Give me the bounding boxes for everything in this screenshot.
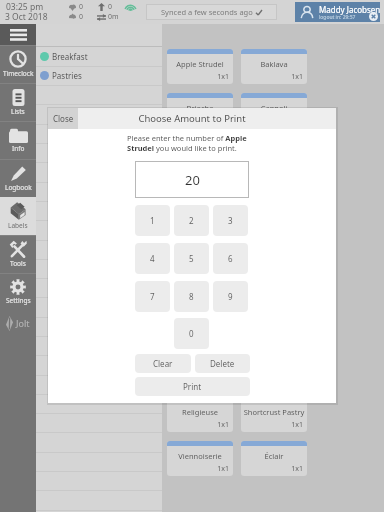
button[interactable]: 4 [135, 243, 170, 274]
staticText: 20 [185, 171, 200, 189]
button[interactable]: Cannoli [241, 93, 307, 128]
button[interactable]: Log out [369, 12, 378, 21]
staticText: 1x1 [167, 72, 229, 82]
staticText: Logbook [5, 183, 32, 192]
button[interactable]: Shortcrust Pastry [241, 397, 307, 432]
staticText: Pastries [52, 70, 82, 81]
staticText: 0 [79, 12, 84, 22]
staticText: Baklava [241, 59, 307, 69]
button[interactable]: 0 [174, 318, 209, 349]
button[interactable]: Timeclock [0, 45, 36, 83]
button[interactable]: Pastries [36, 66, 162, 85]
staticText: 1x1 [167, 420, 229, 430]
staticText: 1x1 [241, 464, 303, 474]
staticText: Print [183, 381, 202, 392]
staticText: 0 [79, 2, 84, 12]
staticText: Flaky Pastry [167, 277, 233, 287]
staticText: Close [53, 113, 74, 124]
button[interactable]: Maddy Jacobsen [295, 2, 380, 22]
button[interactable]: Baklava [241, 49, 307, 84]
button[interactable]: Danish Pastry [241, 180, 307, 215]
staticText: Danish Pastry [241, 190, 307, 200]
button[interactable]: Religieuse [167, 397, 233, 432]
staticText: 1x1 [241, 72, 303, 82]
button[interactable]: Synced a few seconds ago [146, 4, 277, 20]
staticText: Labels [8, 221, 28, 230]
staticText: Cheesecake [167, 146, 233, 156]
button[interactable]: Print [135, 377, 250, 396]
button[interactable]: Flaky Pastry [167, 267, 233, 302]
staticText: 8 [189, 291, 194, 302]
button[interactable]: Menu [0, 24, 36, 45]
staticText: Maddy Jacobsen [319, 4, 381, 15]
staticText: Macaron [241, 277, 307, 287]
staticText: Tools [10, 259, 26, 268]
staticText: 1x1 [167, 290, 229, 300]
staticText: Settings [6, 296, 31, 305]
button[interactable]: Profiterole [167, 354, 233, 389]
staticText: Info [12, 144, 25, 153]
button[interactable]: Breakfast [36, 47, 162, 66]
button[interactable]: Info [0, 121, 36, 159]
button[interactable]: Croissant [167, 180, 233, 215]
button[interactable]: 3 [213, 205, 248, 236]
button[interactable]: Close [48, 108, 78, 129]
staticText: Breakfast [52, 51, 88, 62]
staticText: 1x1 [241, 203, 303, 213]
staticText: 0m [108, 12, 119, 22]
staticText: Éclair [241, 451, 307, 461]
staticText: Croissant [167, 190, 233, 200]
button[interactable]: Settings [0, 273, 36, 311]
button[interactable]: Mille-feuille [167, 310, 233, 345]
button[interactable]: 6 [213, 243, 248, 274]
button[interactable]: Filo Pastry [241, 223, 307, 258]
button[interactable]: Éclair [241, 441, 307, 476]
staticText: 1x1 [241, 159, 303, 169]
staticText: Filo Pastry [241, 233, 307, 243]
staticText: 1 [150, 215, 155, 226]
staticText: Please enter the number of Apple Strudel… [127, 133, 261, 153]
staticText: Profiterole [167, 364, 233, 374]
staticText: Mille-feuille [167, 320, 233, 330]
staticText: Lists [11, 107, 25, 116]
staticText: Viennoiserie [167, 451, 233, 461]
button[interactable]: Tools [0, 235, 36, 273]
staticText: Shortcrust Pastry [241, 407, 307, 417]
staticText: 2 [189, 215, 194, 226]
staticText: Clear [153, 358, 173, 369]
button[interactable]: Jolt [0, 311, 36, 335]
button[interactable]: 8 [174, 281, 209, 312]
button[interactable]: Macaron [241, 267, 307, 302]
button[interactable]: 20 [135, 161, 249, 198]
staticText: 9 [228, 291, 233, 302]
button[interactable]: Puff Pastry [241, 354, 307, 389]
button[interactable]: Logbook [0, 159, 36, 197]
button[interactable]: 2 [174, 205, 209, 236]
staticText: Puff Pastry [241, 364, 307, 374]
button[interactable]: 7 [135, 281, 170, 312]
staticText: Doughnut [167, 233, 233, 243]
button[interactable]: Doughnut [167, 223, 233, 258]
button[interactable]: 5 [174, 243, 209, 274]
button[interactable]: Delete [195, 354, 250, 373]
staticText: 3 Oct 2018 [5, 11, 48, 23]
button[interactable]: Labels [0, 197, 36, 235]
button[interactable]: Viennoiserie [167, 441, 233, 476]
button[interactable]: Choux Pastry [241, 136, 307, 171]
button[interactable]: 1 [135, 205, 170, 236]
staticText: Synced a few seconds ago [161, 7, 253, 17]
button[interactable]: Apple Strudel [167, 49, 233, 84]
button[interactable]: Cheesecake [167, 136, 233, 171]
staticText: 1x1 [167, 159, 229, 169]
staticText: Brioche [167, 103, 233, 113]
staticText: 1x1 [241, 420, 303, 430]
button[interactable]: Brioche [167, 93, 233, 128]
staticText: 03:25 pm [6, 1, 44, 13]
button[interactable]: Clear [135, 354, 191, 373]
staticText: 6 [228, 253, 233, 264]
button[interactable]: Lists [0, 83, 36, 121]
button[interactable]: 9 [213, 281, 248, 312]
